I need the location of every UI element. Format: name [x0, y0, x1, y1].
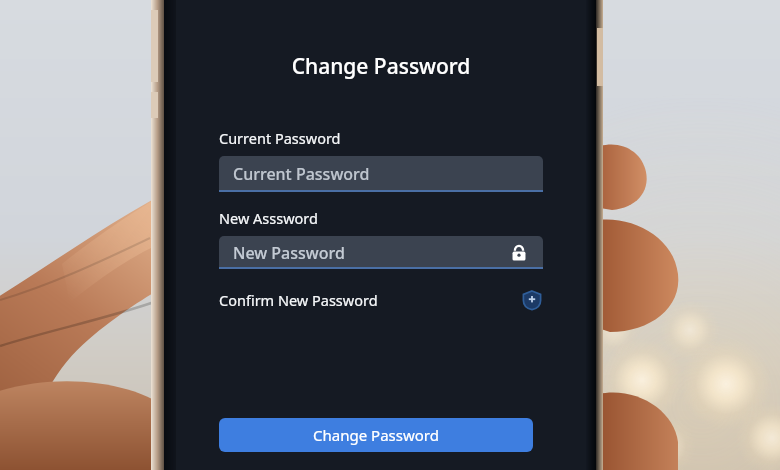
staticText: New Password	[233, 242, 345, 264]
other: Password security	[521, 289, 543, 311]
staticText: Change Password	[176, 52, 586, 81]
button[interactable]: Current Password	[219, 156, 543, 192]
button[interactable]: Toggle password visibility	[509, 243, 529, 263]
button[interactable]: Change Password	[219, 418, 533, 452]
staticText: Current Password	[219, 128, 341, 148]
staticText: Change Password	[313, 425, 439, 445]
staticText: Confirm New Password	[219, 290, 378, 310]
button[interactable]: Confirm New Password	[219, 289, 543, 311]
button[interactable]: New Password	[219, 236, 543, 269]
staticText: New Asssword	[219, 208, 318, 228]
staticText: Current Password	[233, 163, 370, 185]
